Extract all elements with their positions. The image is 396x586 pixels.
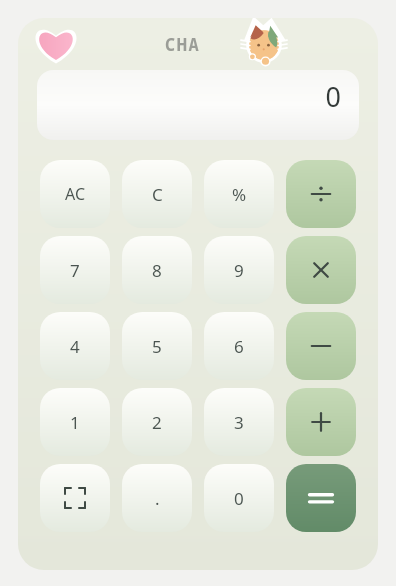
button[interactable]: AC	[40, 160, 110, 228]
staticText: 3	[234, 411, 244, 434]
button[interactable]: 7	[40, 236, 110, 304]
button[interactable]: Favorite	[34, 25, 78, 63]
staticText: 8	[152, 259, 162, 282]
button[interactable]: 5	[122, 312, 192, 380]
staticText: %	[232, 183, 247, 206]
staticText: C	[152, 183, 163, 206]
button[interactable]: 0	[37, 70, 359, 140]
button[interactable]	[286, 312, 356, 380]
button[interactable]	[286, 464, 356, 532]
button[interactable]: 9	[204, 236, 274, 304]
button[interactable]: 1	[40, 388, 110, 456]
staticText: 4	[70, 335, 80, 358]
button[interactable]	[286, 388, 356, 456]
button[interactable]	[286, 160, 356, 228]
button[interactable]: C	[122, 160, 192, 228]
button[interactable]: Scan	[40, 464, 110, 532]
staticText: 0	[234, 487, 244, 510]
staticText: 9	[234, 259, 244, 282]
button[interactable]: 6	[204, 312, 274, 380]
staticText: AC	[65, 183, 86, 205]
staticText: 1	[70, 411, 80, 434]
staticText: CHA	[165, 33, 201, 56]
button[interactable]	[286, 236, 356, 304]
button[interactable]: %	[204, 160, 274, 228]
button[interactable]: 8	[122, 236, 192, 304]
staticText: .	[155, 487, 160, 510]
staticText: 5	[152, 335, 162, 358]
staticText: 0	[325, 78, 341, 115]
button[interactable]: 4	[40, 312, 110, 380]
button[interactable]: 2	[122, 388, 192, 456]
staticText: 7	[70, 259, 80, 282]
button[interactable]: Mascot	[240, 22, 288, 66]
button[interactable]: .	[122, 464, 192, 532]
button[interactable]: 0	[204, 464, 274, 532]
staticText: 6	[234, 335, 244, 358]
staticText: 2	[152, 411, 162, 434]
button[interactable]: 3	[204, 388, 274, 456]
